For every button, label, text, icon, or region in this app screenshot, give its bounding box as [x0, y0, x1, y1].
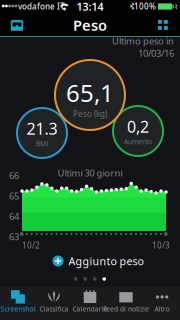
- button[interactable]: Grid view: [146, 13, 180, 37]
- button[interactable]: Feed di notizie: [108, 287, 144, 320]
- staticText: Peso (kg): [73, 109, 107, 119]
- button[interactable]: Altro: [144, 287, 180, 320]
- staticText: 100%: [134, 1, 156, 12]
- staticText: Peso: [73, 15, 107, 35]
- button[interactable]: Aggiunto peso: [50, 252, 146, 270]
- staticText: 21.3: [26, 118, 57, 139]
- button[interactable]: Inbox: [0, 13, 34, 37]
- button[interactable]: Classifica: [36, 287, 72, 320]
- staticText: Classifica: [39, 305, 68, 313]
- staticText: Aumento: [124, 137, 152, 146]
- staticText: 66: [9, 169, 19, 182]
- staticText: Feed di notizie: [103, 305, 149, 313]
- staticText: 10/3: [152, 240, 170, 251]
- staticText: BMI: [36, 139, 48, 148]
- staticText: 65: [9, 190, 19, 202]
- staticText: Ultimo peso in: [112, 35, 174, 47]
- staticText: 10/2: [22, 240, 40, 251]
- staticText: 63: [9, 230, 19, 243]
- staticText: Screenshot: [0, 305, 35, 313]
- staticText: 64: [9, 210, 19, 222]
- staticText: 13:14: [76, 0, 103, 14]
- button[interactable]: Calendario: [72, 287, 108, 320]
- staticText: Ultimi 30 giorni: [57, 167, 122, 179]
- button[interactable]: Screenshot: [0, 287, 36, 320]
- staticText: Altro: [154, 305, 169, 313]
- staticText: Calendario: [72, 305, 107, 313]
- staticText: Aggiunto peso: [68, 254, 143, 268]
- staticText: 65,1: [66, 77, 114, 109]
- staticText: 0,2: [127, 116, 149, 137]
- staticText: vodafone IT: [18, 1, 64, 12]
- staticText: 10/03/16: [138, 47, 174, 59]
